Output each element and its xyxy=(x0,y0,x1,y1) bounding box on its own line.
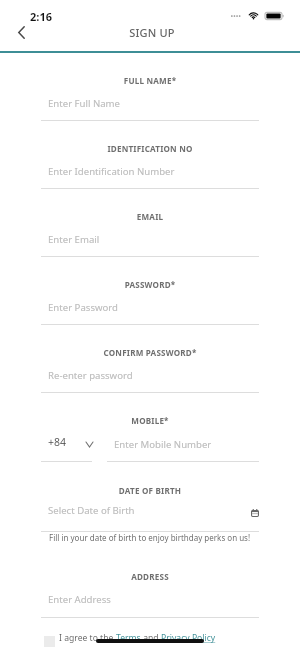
staticText: Enter Full Name xyxy=(48,97,121,110)
staticText: Re-enter password xyxy=(48,369,133,382)
staticText: Enter Password xyxy=(48,301,118,314)
staticText: CONFIRM PASSWORD* xyxy=(0,347,300,358)
staticText: 2:16 xyxy=(30,9,52,24)
staticText: DATE OF BIRTH xyxy=(0,485,300,496)
staticText: ADDRESS xyxy=(0,571,300,582)
staticText: Enter Address xyxy=(48,593,111,606)
staticText: SIGN UP xyxy=(2,25,300,40)
button[interactable]: I agree to the xyxy=(44,632,216,644)
staticText: +84 xyxy=(48,435,67,449)
staticText: PASSWORD* xyxy=(0,279,300,290)
button[interactable]: Select country code xyxy=(82,433,96,449)
button[interactable]: Back xyxy=(7,18,35,46)
staticText: IDENTIFICATION NO xyxy=(0,143,300,154)
staticText: MOBILE* xyxy=(0,415,300,426)
staticText: I agree to the xyxy=(59,632,116,644)
staticText: and xyxy=(141,632,161,644)
button[interactable]: Pick date xyxy=(248,506,261,519)
staticText: EMAIL xyxy=(0,211,300,222)
staticText: Enter Mobile Number xyxy=(114,438,212,451)
staticText: Terms xyxy=(116,632,141,644)
staticText: Privacy Policy xyxy=(161,632,216,644)
staticText: FULL NAME* xyxy=(0,75,300,86)
staticText: Fill in your date of birth to enjoy birt… xyxy=(49,532,251,543)
staticText: Select Date of Birth xyxy=(48,504,135,517)
staticText: Enter Identification Number xyxy=(48,165,175,178)
staticText: Enter Email xyxy=(48,233,100,246)
